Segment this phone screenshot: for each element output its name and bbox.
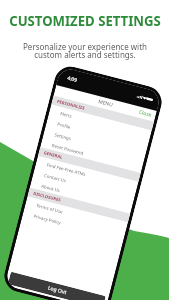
button[interactable]: Close <box>138 109 156 120</box>
staticText: PERSONALIZE <box>56 99 86 112</box>
staticText: Settings <box>54 131 72 141</box>
staticText: Profile <box>57 121 72 130</box>
button[interactable]: Find Fee-Free ATMs <box>35 156 139 192</box>
staticText: Terms of Use <box>36 202 63 215</box>
staticText: Close <box>138 109 152 119</box>
staticText: 4:09 <box>66 75 78 84</box>
button[interactable]: Settings <box>43 126 146 162</box>
staticText: About Us <box>41 183 61 193</box>
button[interactable]: Contact Us <box>32 166 136 203</box>
staticText: Find Fee-Free ATMs <box>46 161 86 177</box>
button[interactable]: Privacy Policy <box>22 207 125 244</box>
button[interactable]: Alerts <box>48 104 152 141</box>
staticText: Reset Password <box>51 142 85 156</box>
staticText: GENERAL <box>43 150 64 161</box>
staticText: Privacy Policy <box>33 213 62 225</box>
staticText: DISCLOSURES <box>32 191 62 204</box>
staticText: Personalize your experience with custom … <box>23 41 147 60</box>
staticText: Alerts <box>60 110 73 119</box>
staticText: CUSTOMIZED SETTINGS <box>9 11 161 30</box>
staticText: MENU <box>97 98 114 109</box>
staticText: Contact Us <box>44 172 67 184</box>
button[interactable]: Reset Password <box>40 136 144 173</box>
button[interactable]: Terms of Use <box>25 196 128 233</box>
button[interactable]: Log Out <box>8 272 106 300</box>
button[interactable]: About Us <box>30 177 133 214</box>
staticText: Log Out <box>47 284 67 296</box>
button[interactable]: Profile <box>46 115 149 152</box>
